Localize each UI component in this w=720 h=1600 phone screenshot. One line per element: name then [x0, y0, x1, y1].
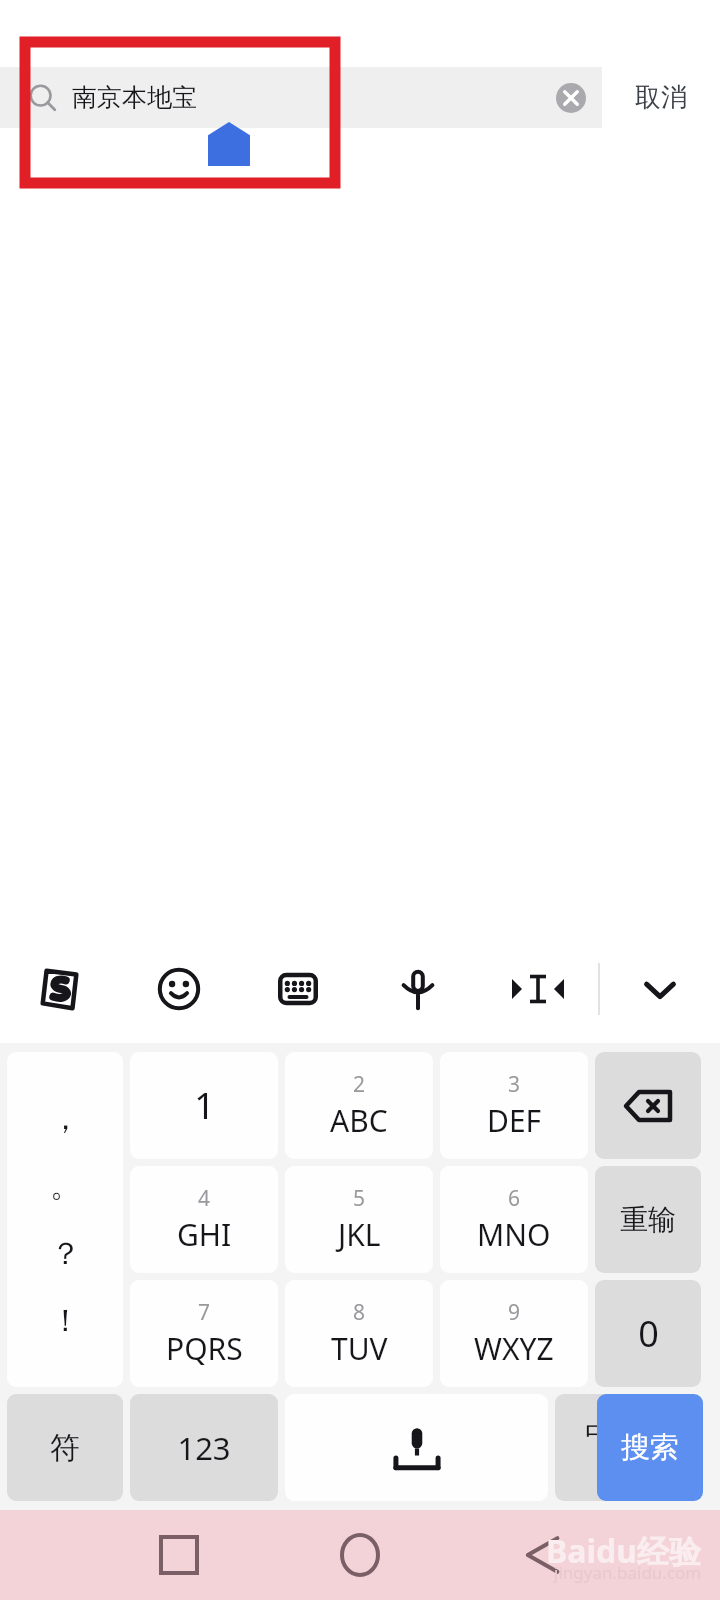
button[interactable]: Clear text	[554, 81, 588, 115]
button[interactable]: 符	[7, 1394, 123, 1501]
button[interactable]: 重输	[595, 1166, 701, 1273]
button[interactable]: Hide keyboard	[600, 935, 720, 1043]
button[interactable]: 123	[130, 1394, 278, 1501]
button[interactable]: 9	[440, 1280, 588, 1387]
button[interactable]: Recent apps	[148, 1524, 210, 1586]
staticText: ，	[50, 1099, 81, 1138]
staticText: ABC	[330, 1100, 388, 1141]
button[interactable]: Voice input	[358, 935, 478, 1043]
button[interactable]: Switch Chinese English	[555, 1394, 695, 1501]
staticText: 9	[508, 1298, 521, 1327]
staticText: PQRS	[166, 1328, 243, 1369]
button[interactable]: 0	[595, 1280, 701, 1387]
button[interactable]: 3	[440, 1052, 588, 1159]
staticText: ？	[50, 1234, 81, 1273]
staticText: 中	[585, 1415, 614, 1452]
button[interactable]: 7	[130, 1280, 278, 1387]
staticText: GHI	[177, 1214, 232, 1255]
staticText: 符	[50, 1429, 80, 1467]
staticText: JKL	[338, 1214, 381, 1255]
staticText: 1	[194, 1081, 215, 1130]
button[interactable]: 1	[130, 1052, 278, 1159]
staticText: 。	[50, 1166, 81, 1205]
staticText: 123	[177, 1427, 231, 1469]
staticText: 取消	[635, 81, 687, 114]
button[interactable]: 6	[440, 1166, 588, 1273]
staticText: 南京本地宝	[72, 82, 197, 113]
staticText: 5	[353, 1184, 366, 1213]
button[interactable]: Emoji	[119, 935, 238, 1043]
button[interactable]: Move cursor	[478, 935, 598, 1043]
button[interactable]: Sogou input method	[0, 935, 119, 1043]
staticText: 7	[198, 1298, 211, 1327]
staticText: 3	[508, 1070, 521, 1099]
button[interactable]: 南京本地宝	[0, 67, 602, 128]
staticText: 英	[642, 1450, 667, 1481]
staticText: ！	[50, 1301, 81, 1340]
staticText: 2	[353, 1070, 366, 1099]
button[interactable]: 搜索	[597, 1394, 703, 1501]
staticText: WXYZ	[474, 1328, 554, 1369]
button[interactable]: ，	[7, 1052, 123, 1387]
staticText: TUV	[331, 1328, 388, 1369]
button[interactable]: Keyboard layout	[238, 935, 358, 1043]
staticText: 重输	[620, 1202, 676, 1237]
button[interactable]: 8	[285, 1280, 433, 1387]
button[interactable]: 5	[285, 1166, 433, 1273]
button[interactable]: 取消	[602, 67, 720, 128]
button[interactable]: 4	[130, 1166, 278, 1273]
staticText: jingyan.baidu.com	[554, 1561, 702, 1584]
staticText: 搜索	[621, 1429, 679, 1466]
staticText: DEF	[487, 1100, 542, 1141]
staticText: 0	[638, 1309, 659, 1358]
button[interactable]: 2	[285, 1052, 433, 1159]
staticText: Baidu经验	[546, 1529, 702, 1573]
button[interactable]: Space	[285, 1394, 548, 1501]
button[interactable]: Backspace	[595, 1052, 701, 1159]
staticText: 4	[198, 1184, 211, 1213]
button[interactable]: Back	[512, 1524, 574, 1586]
staticText: 8	[353, 1298, 366, 1327]
staticText: 6	[508, 1184, 521, 1213]
staticText: MNO	[477, 1214, 551, 1255]
button[interactable]: Home	[329, 1524, 391, 1586]
